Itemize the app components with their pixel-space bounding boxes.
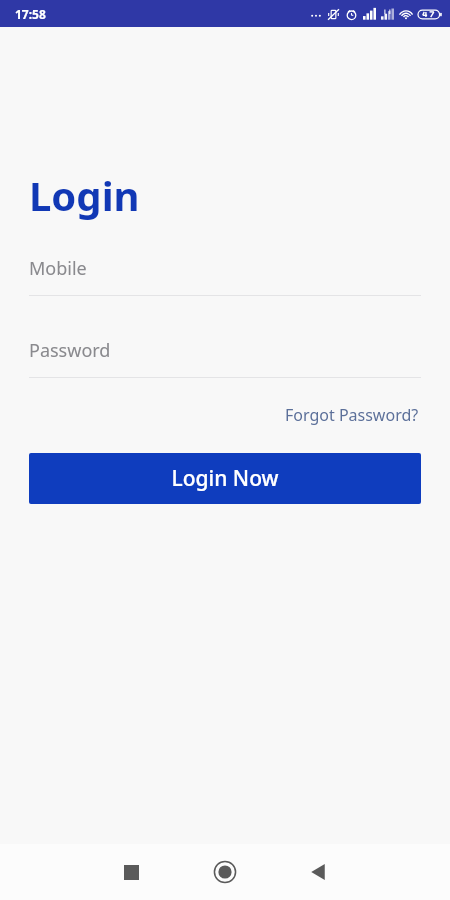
staticText: Forgot Password? <box>285 404 419 426</box>
staticText: Password <box>29 338 111 363</box>
button[interactable]: Password <box>29 337 421 363</box>
button[interactable]: Forgot Password? <box>283 401 421 429</box>
staticText: Login <box>29 168 140 222</box>
button[interactable]: Home <box>205 852 245 892</box>
button[interactable]: Mobile <box>29 255 421 281</box>
button[interactable]: Back <box>298 852 338 892</box>
staticText: Mobile <box>29 256 87 281</box>
button[interactable]: Login Now <box>29 453 421 504</box>
button[interactable]: Recent apps <box>111 852 151 892</box>
staticText: Login Now <box>171 464 279 493</box>
staticText: 17:58 <box>15 6 46 22</box>
